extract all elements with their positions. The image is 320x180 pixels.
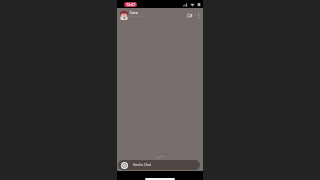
staticText: Send a Chat bbox=[133, 163, 151, 167]
button[interactable]: Camera bbox=[184, 8, 195, 22]
button[interactable]: More options bbox=[195, 8, 202, 22]
button[interactable]: Send a Chat bbox=[118, 160, 200, 170]
staticText: 12:47 bbox=[126, 2, 136, 7]
staticText: Tap to chat bbox=[130, 14, 143, 17]
button[interactable]: Profile bbox=[120, 11, 128, 20]
staticText: Cara bbox=[130, 10, 138, 15]
